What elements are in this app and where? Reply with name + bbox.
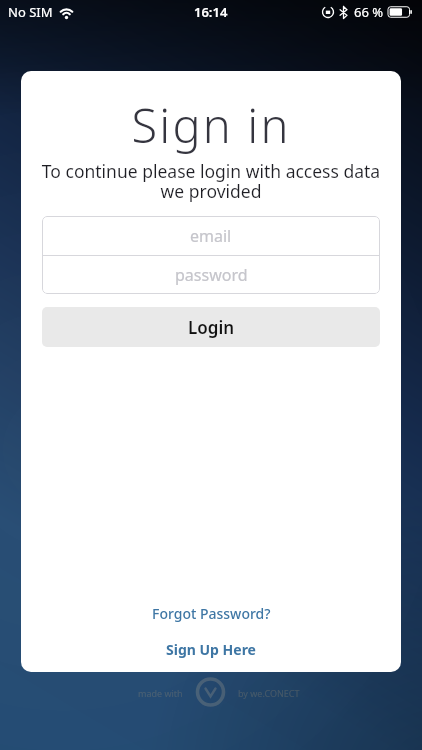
button[interactable]: email	[42, 216, 380, 255]
staticText: by we.CONECT	[238, 687, 300, 699]
staticText: No SIM	[8, 3, 53, 21]
staticText: password	[175, 264, 248, 286]
button[interactable]: Login	[42, 307, 380, 347]
button[interactable]: Forgot Password?	[146, 602, 277, 625]
staticText: To continue please login with access dat…	[21, 159, 401, 204]
staticText: 16:14	[194, 3, 228, 21]
staticText: made with	[138, 687, 183, 699]
staticText: email	[190, 225, 232, 247]
button[interactable]: Sign Up Here	[160, 638, 262, 661]
staticText: Login	[188, 316, 235, 339]
staticText: 66 %	[354, 3, 384, 21]
button[interactable]: password	[42, 256, 380, 294]
staticText: Forgot Password?	[152, 604, 271, 623]
staticText: Sign in	[21, 93, 401, 157]
staticText: Sign Up Here	[166, 640, 256, 659]
